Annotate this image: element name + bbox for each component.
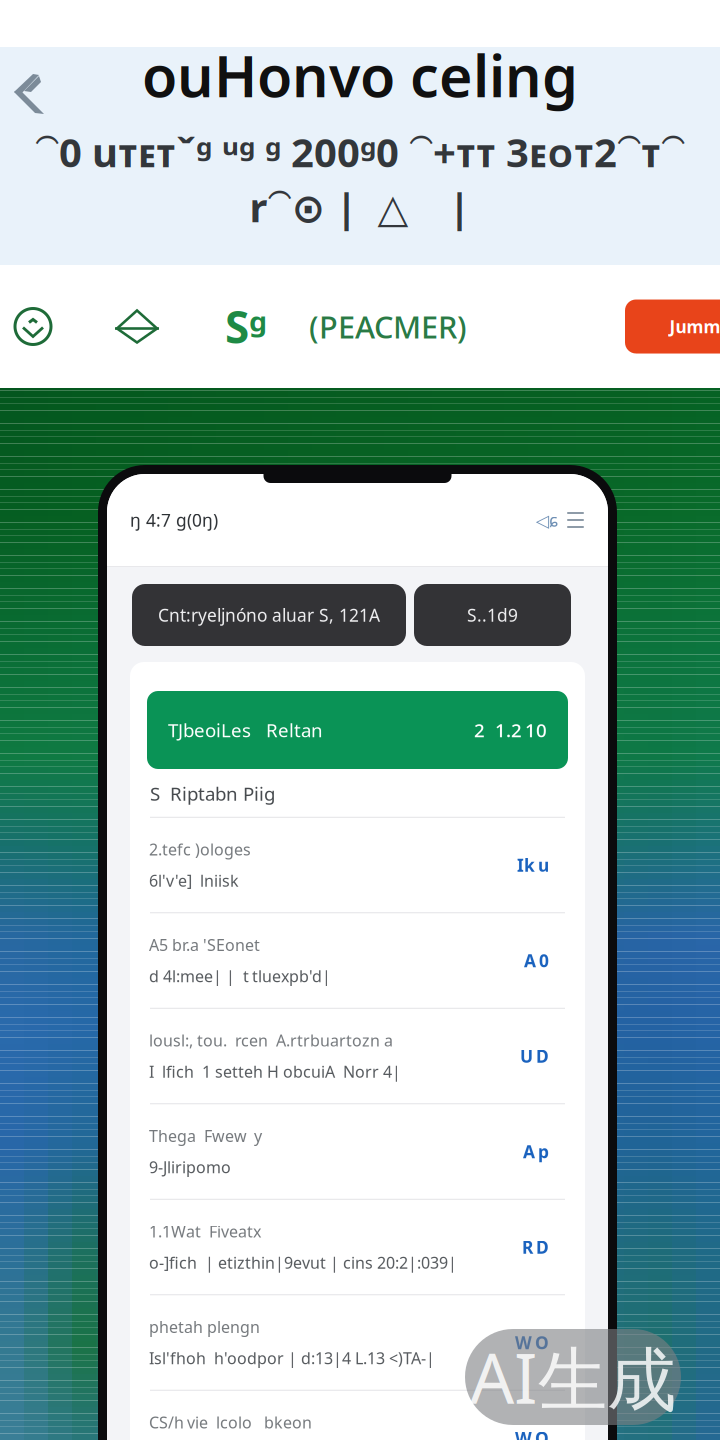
button[interactable]: lousl:, tou. rcen A.rtrbuartozn a [130, 1009, 585, 1103]
staticText: I lfich 1 setteh H obcuiA Norr 4| [149, 1061, 401, 1082]
staticText: A 0 [524, 949, 549, 972]
button[interactable]: Thega Fwew y [130, 1104, 585, 1199]
staticText: 6l'v'e] lniisk [149, 870, 239, 891]
button[interactable]: 2.tefc )ologes [130, 818, 585, 912]
staticText: r⁀⊙ | △ | [249, 180, 470, 233]
staticText: phetah plengn [149, 1316, 260, 1337]
staticText: Sᵍ [225, 297, 267, 356]
button[interactable]: S..1d9 [414, 584, 571, 646]
staticText: 2.tefc )ologes [149, 839, 251, 860]
staticText: TJbeoiLes Reltan [168, 718, 323, 742]
button[interactable]: Jumma [625, 299, 720, 353]
button[interactable]: Back [0, 47, 48, 116]
staticText: d 4l:mee| | t tluexpb'd| [149, 965, 331, 987]
staticText: ◁ɕ [536, 508, 558, 531]
button[interactable]: 1.1Wat Fiveatx [130, 1200, 585, 1294]
button[interactable]: Brand logo [113, 305, 161, 347]
button[interactable]: Account [13, 306, 53, 346]
staticText: A5 br.a 'SEonet [149, 934, 260, 955]
button[interactable]: A5 br.a 'SEonet [130, 913, 585, 1008]
staticText: Thega Fwew y [149, 1125, 262, 1146]
button[interactable]: S Riptabn Piig [130, 769, 585, 817]
staticText: AI生成 [470, 1331, 676, 1423]
staticText: W O [515, 1426, 549, 1440]
staticText: ŋ 4:7 ɡ(0ŋ) [130, 508, 218, 531]
staticText: ⁀0 uᴛᴇᴛˇᵍ ᵘᵍ ᵍ 200ᵍ0 ⁀+ᴛᴛ 3ᴇᴏᴛ2⁀ᴛ⁀ [35, 125, 685, 178]
staticText: A p [523, 1140, 549, 1163]
staticText: lousl:, tou. rcen A.rtrbuartozn a [149, 1030, 393, 1051]
staticText: S Riptabn Piig [150, 781, 275, 806]
staticText: R D [522, 1235, 549, 1258]
staticText: S..1d9 [467, 603, 518, 626]
staticText: 1.1Wat Fiveatx [149, 1221, 261, 1242]
staticText: W O [515, 1331, 549, 1354]
staticText: 2 1.2 10 [474, 718, 547, 742]
staticText: Ik u [517, 853, 549, 876]
staticText: Cnt:ryeljnóno aluar S, 121A [158, 603, 380, 626]
staticText: Jumma [669, 315, 720, 338]
staticText: 9-Jliripomo [149, 1156, 231, 1178]
staticText: (PEACMER) [309, 306, 467, 347]
staticText: Isl'fhoh h'oodpor | d:13|4 L.13 <)TA-| [149, 1347, 435, 1369]
button[interactable]: phetah plengn [130, 1295, 585, 1390]
staticText: o-]fich | etizthin|9evut | cins 20:2|:03… [149, 1252, 457, 1273]
staticText: CS/h vie lcolo bkeon [149, 1412, 312, 1433]
staticText: ouHonvo celing [142, 37, 578, 113]
button[interactable]: CS/h vie lcolo bkeon [130, 1391, 585, 1440]
staticText: U D [520, 1044, 549, 1067]
button[interactable]: Cnt:ryeljnóno aluar S, 121A [132, 584, 406, 646]
button[interactable]: TJbeoiLes Reltan [147, 691, 568, 769]
